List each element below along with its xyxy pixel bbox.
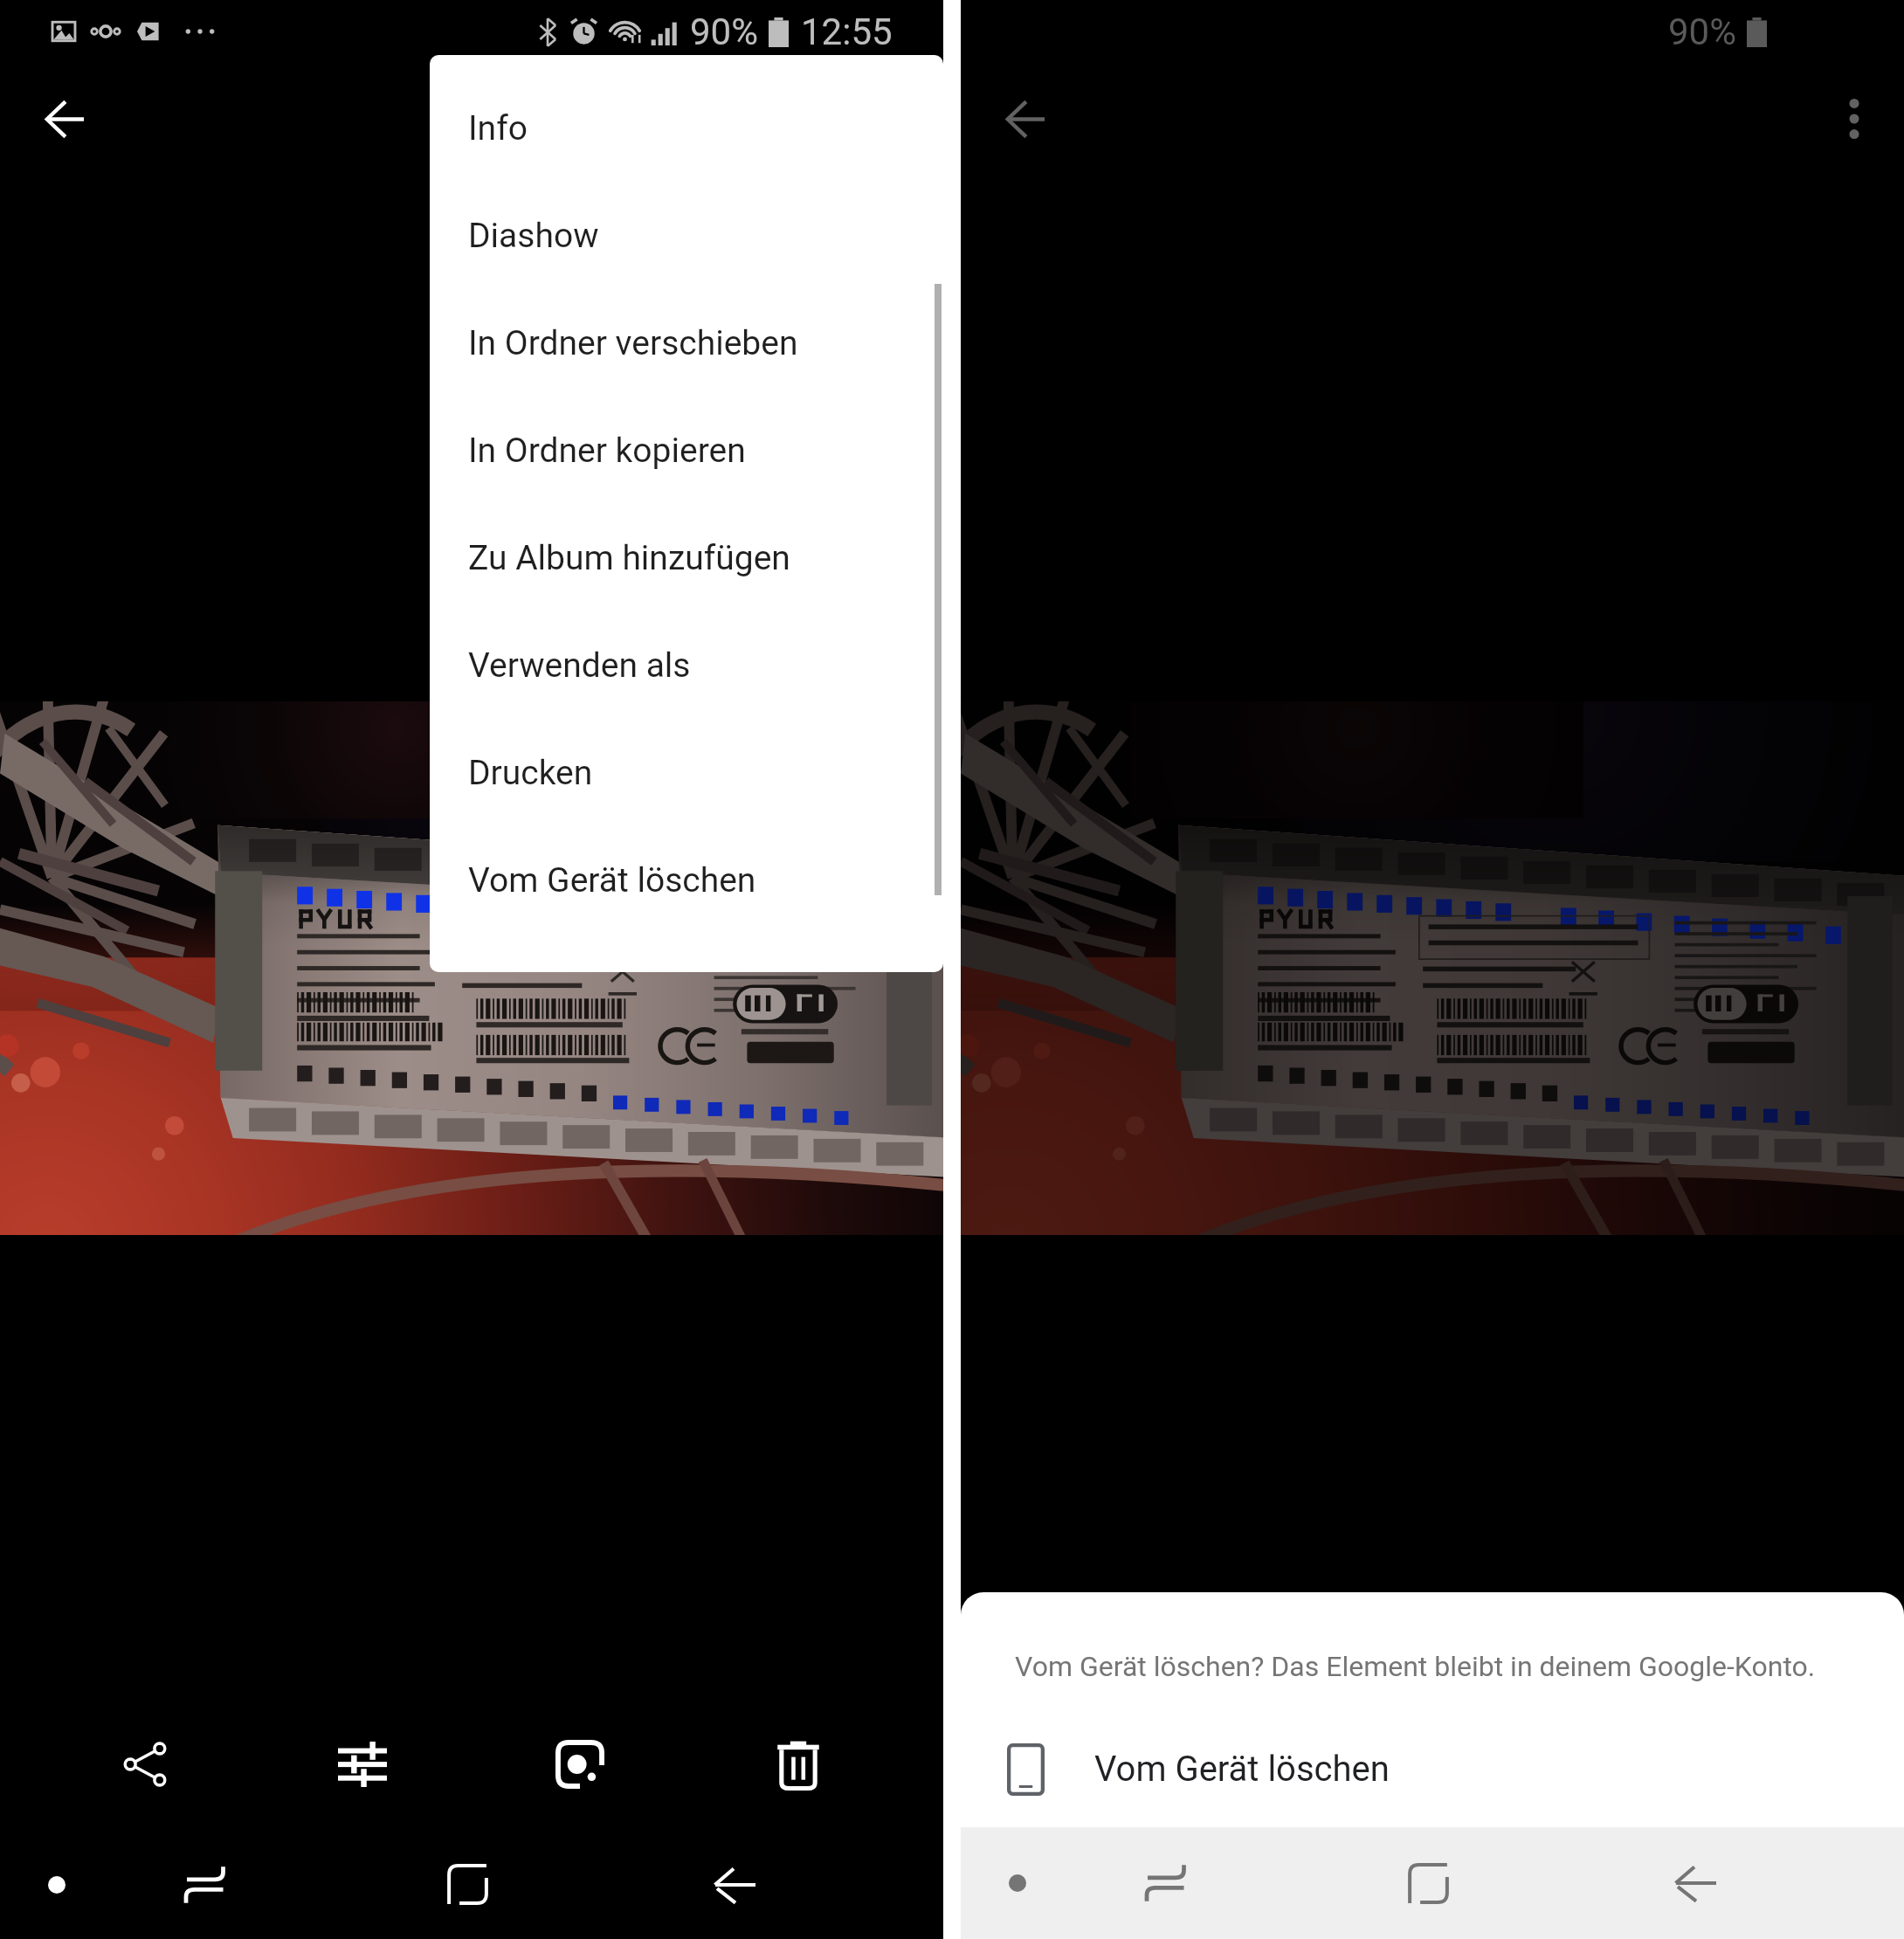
- staticText: 12:55: [801, 10, 893, 53]
- button[interactable]: Home: [1341, 1827, 1515, 1939]
- staticText: Drucken: [468, 753, 593, 793]
- button[interactable]: Drucken: [430, 719, 943, 826]
- button[interactable]: In Ordner verschieben: [430, 289, 943, 397]
- button[interactable]: Edit: [253, 1699, 471, 1830]
- button[interactable]: More options: [1806, 71, 1902, 167]
- staticText: 90%: [690, 10, 758, 53]
- button[interactable]: Back: [646, 1830, 821, 1939]
- button[interactable]: Share: [36, 1699, 253, 1830]
- button[interactable]: Back: [977, 71, 1073, 167]
- button[interactable]: Diashow: [430, 182, 943, 289]
- button[interactable]: Back: [1607, 1827, 1782, 1939]
- button[interactable]: Verwenden als: [430, 611, 943, 719]
- staticText: 90%: [1668, 10, 1736, 53]
- staticText: Diashow: [468, 216, 599, 256]
- staticText: In Ordner verschieben: [468, 323, 798, 363]
- button[interactable]: Vom Gerät löschen: [430, 826, 943, 934]
- staticText: Vom Gerät löschen: [468, 860, 756, 900]
- staticText: Vom Gerät löschen? Das Element bleibt in…: [1015, 1650, 1816, 1683]
- button[interactable]: Back: [17, 71, 113, 167]
- button[interactable]: Keyboard indicator: [0, 1830, 114, 1939]
- button[interactable]: Info: [430, 74, 943, 182]
- button[interactable]: Recents: [117, 1830, 292, 1939]
- staticText: Info: [468, 108, 528, 148]
- staticText: Zu Album hinzufügen: [468, 538, 790, 578]
- staticText: In Ordner kopieren: [468, 431, 746, 471]
- button[interactable]: In Ordner kopieren: [430, 397, 943, 504]
- button[interactable]: Zu Album hinzufügen: [430, 504, 943, 611]
- staticText: Vom Gerät löschen: [1094, 1749, 1390, 1790]
- button[interactable]: Keyboard indicator: [961, 1827, 1074, 1939]
- button[interactable]: Vom Gerät löschen: [961, 1711, 1904, 1827]
- button[interactable]: Delete: [689, 1699, 907, 1830]
- button[interactable]: Google Lens: [471, 1699, 689, 1830]
- staticText: Verwenden als: [468, 645, 691, 686]
- button[interactable]: Recents: [1078, 1827, 1252, 1939]
- button[interactable]: Home: [380, 1830, 555, 1939]
